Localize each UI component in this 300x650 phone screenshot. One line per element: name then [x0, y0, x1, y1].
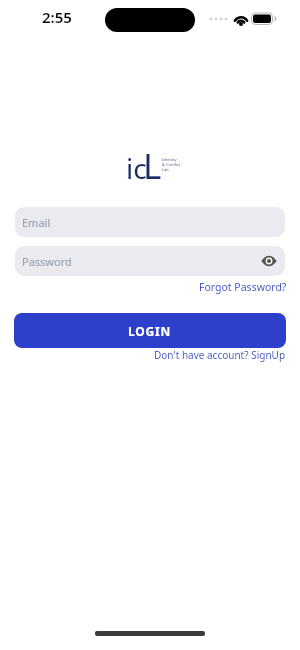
button[interactable] [259, 253, 279, 269]
button[interactable]: Password [15, 246, 285, 276]
staticText: LOGIN [128, 323, 172, 339]
button[interactable]: Don't have account? SignUp [154, 348, 286, 362]
staticText: L [143, 142, 162, 190]
button[interactable]: LOGIN [14, 313, 286, 348]
button[interactable]: Forgot Password? [199, 280, 287, 294]
staticText: Email [22, 215, 51, 230]
button[interactable]: Email [15, 207, 285, 237]
staticText: Password [22, 254, 72, 269]
staticText: & Conflict [162, 162, 181, 167]
staticText: Lab [162, 167, 169, 172]
staticText: ic [126, 149, 147, 187]
staticText: 2:55 [42, 7, 72, 27]
staticText: Identity [162, 157, 177, 162]
